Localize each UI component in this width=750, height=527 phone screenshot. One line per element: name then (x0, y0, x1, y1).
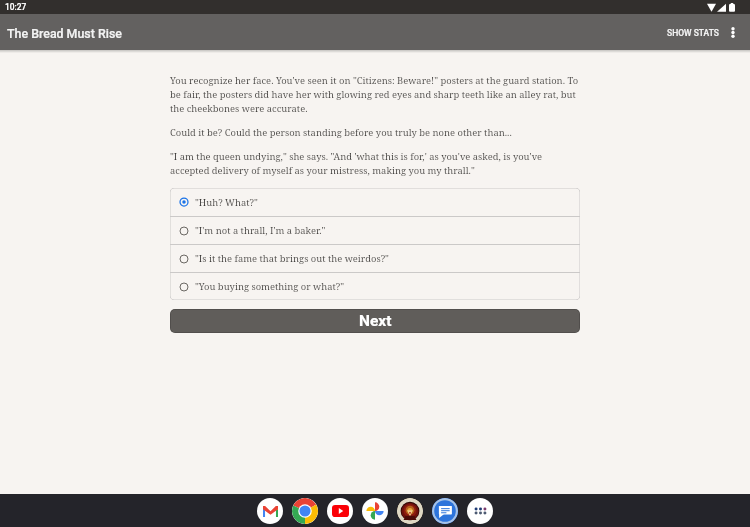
button[interactable]: Next (170, 309, 580, 333)
staticText: "I'm not a thrall, I'm a baker." (195, 224, 326, 237)
button[interactable]: Messages (432, 498, 458, 524)
button[interactable]: "You buying something or what?" (170, 273, 580, 300)
button[interactable]: "Huh? What?" (170, 188, 580, 216)
staticText: "Huh? What?" (195, 196, 258, 209)
staticText: "You buying something or what?" (195, 280, 345, 293)
button[interactable]: Game (397, 498, 423, 524)
staticText: You recognize her face. You've seen it o… (170, 74, 580, 115)
button[interactable]: Gmail (257, 498, 283, 524)
button[interactable]: Chrome (292, 498, 318, 524)
staticText: Could it be? Could the person standing b… (170, 126, 512, 139)
staticText: Next (359, 312, 392, 330)
staticText: "I am the queen undying," she says. "And… (170, 150, 580, 177)
staticText: The Bread Must Rise (7, 26, 122, 41)
button[interactable]: SHOW STATS (657, 18, 719, 46)
button[interactable]: "Is it the fame that brings out the weir… (170, 245, 580, 272)
staticText: SHOW STATS (667, 28, 719, 38)
staticText: "Is it the fame that brings out the weir… (195, 252, 389, 265)
button[interactable]: Photos (362, 498, 388, 524)
button[interactable]: YouTube (327, 498, 353, 524)
button[interactable]: All apps (467, 498, 493, 524)
button[interactable]: "I'm not a thrall, I'm a baker." (170, 217, 580, 244)
staticText: 10:27 (5, 2, 27, 12)
button[interactable]: More options (719, 14, 746, 50)
